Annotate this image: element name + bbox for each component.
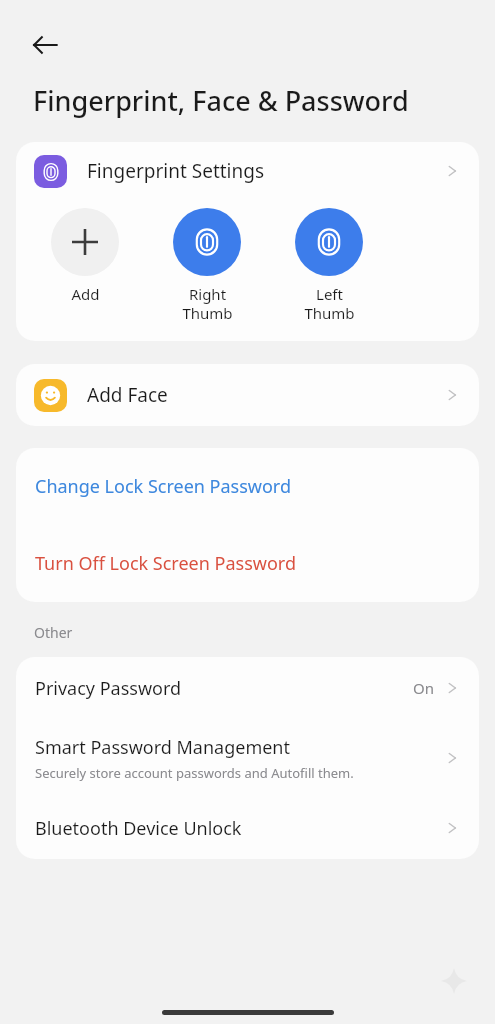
- staticText: Securely store account passwords and Aut…: [35, 764, 354, 782]
- staticText: Turn Off Lock Screen Password: [35, 551, 296, 576]
- staticText: Change Lock Screen Password: [35, 474, 291, 499]
- staticText: Fingerprint Settings: [87, 158, 265, 184]
- button[interactable]: Right Thumb: [158, 208, 256, 323]
- staticText: Add: [71, 284, 100, 304]
- button[interactable]: Smart Password Management: [16, 719, 479, 797]
- staticText: Privacy Password: [35, 676, 182, 701]
- button[interactable]: Change Lock Screen Password: [16, 448, 479, 525]
- staticText: Add Face: [87, 382, 168, 408]
- staticText: On: [413, 678, 434, 698]
- button[interactable]: Add: [36, 208, 134, 304]
- button[interactable]: Privacy Password: [16, 657, 479, 719]
- staticText: Smart Password Management: [35, 735, 290, 760]
- button[interactable]: Left Thumb: [280, 208, 378, 323]
- button[interactable]: Turn Off Lock Screen Password: [16, 525, 479, 602]
- staticText: Left Thumb: [304, 284, 355, 323]
- button[interactable]: Add Face: [16, 364, 479, 426]
- staticText: Other: [34, 623, 73, 642]
- button[interactable]: Bluetooth Device Unlock: [16, 797, 479, 859]
- staticText: Bluetooth Device Unlock: [35, 816, 242, 841]
- staticText: Fingerprint, Face & Password: [33, 82, 409, 119]
- button[interactable]: Fingerprint Settings: [16, 142, 479, 200]
- button[interactable]: Back: [22, 22, 68, 68]
- staticText: Right Thumb: [182, 284, 233, 323]
